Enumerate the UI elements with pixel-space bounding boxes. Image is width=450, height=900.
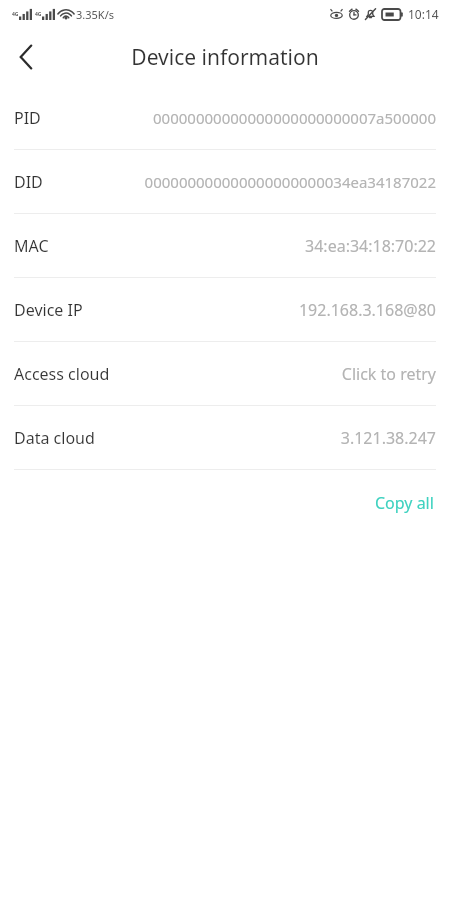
staticText: 34:ea:34:18:70:22 — [57, 235, 436, 257]
staticText: Device information — [131, 43, 319, 72]
button[interactable]: Access cloud — [0, 342, 450, 405]
staticText: MAC — [14, 235, 49, 257]
staticText: Device IP — [14, 299, 83, 321]
staticText: Click to retry — [118, 363, 436, 385]
button[interactable]: Data cloud — [0, 406, 450, 469]
staticText: DID — [14, 171, 43, 193]
staticText: 000000000000000000000034ea34187022 — [53, 172, 436, 192]
staticText: 3.121.38.247 — [103, 427, 436, 449]
staticText: 4G — [35, 11, 42, 18]
button[interactable]: Copy all — [359, 482, 450, 524]
staticText: 3.35K/s — [76, 7, 114, 22]
button[interactable]: PID — [0, 86, 450, 149]
staticText: 4G — [12, 11, 19, 18]
staticText: 192.168.3.168@80 — [91, 299, 436, 321]
staticText: PID — [14, 107, 41, 129]
button[interactable]: Device IP — [0, 278, 450, 341]
staticText: 00000000000000000000000007a500000 — [51, 108, 436, 128]
staticText: 10:14 — [408, 6, 439, 22]
staticText: Data cloud — [14, 427, 95, 449]
staticText: Access cloud — [14, 363, 110, 385]
staticText: Copy all — [375, 492, 434, 514]
button[interactable]: DID — [0, 150, 450, 213]
button[interactable]: MAC — [0, 214, 450, 277]
button[interactable]: Back — [0, 31, 52, 83]
